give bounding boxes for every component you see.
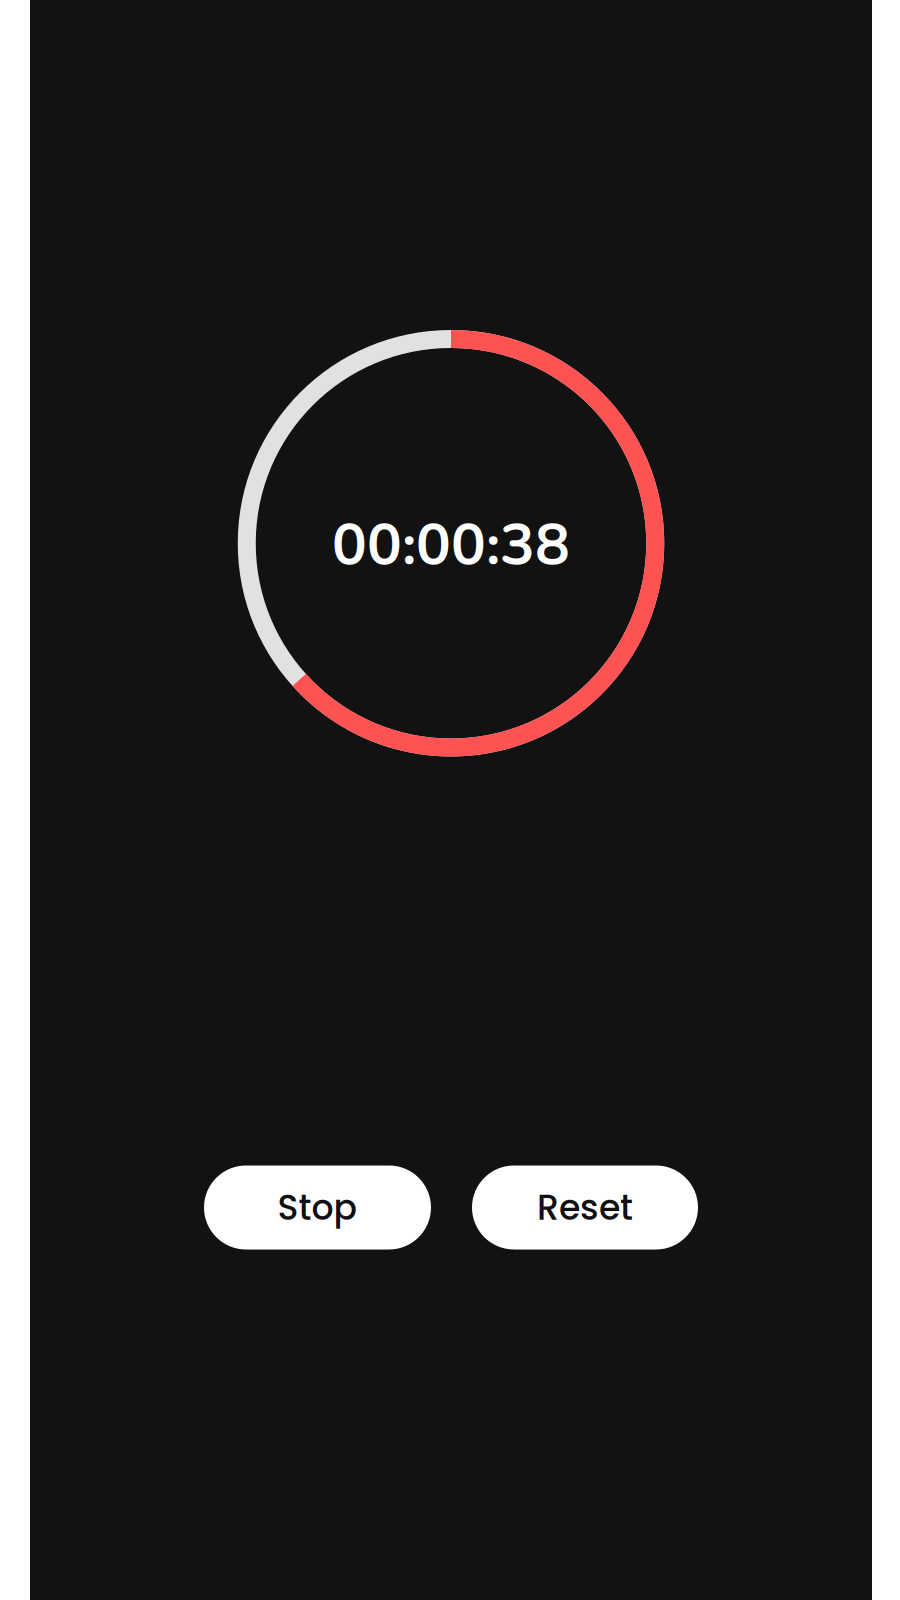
staticText: Reset bbox=[537, 1183, 633, 1232]
button[interactable]: Reset bbox=[472, 1165, 698, 1249]
staticText: Stop bbox=[277, 1183, 357, 1232]
staticText: 00:00:38 bbox=[332, 506, 570, 585]
button[interactable]: Stop bbox=[204, 1165, 431, 1249]
